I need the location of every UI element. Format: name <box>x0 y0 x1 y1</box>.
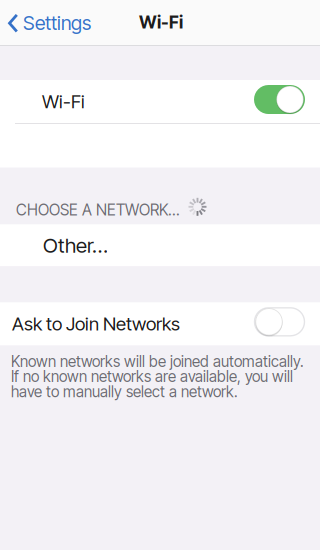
staticText: Known networks will be joined automatica… <box>11 352 304 371</box>
button[interactable]: Settings <box>0 0 97 46</box>
button[interactable]: Ask to Join Networks <box>0 302 320 345</box>
staticText: Settings <box>23 11 91 35</box>
staticText: Wi-Fi <box>42 90 85 113</box>
button[interactable]: Wi-Fi <box>0 80 320 123</box>
staticText: If no known networks are available, you … <box>11 367 293 386</box>
staticText: have to manually select a network. <box>11 382 238 401</box>
staticText: Other… <box>43 233 108 258</box>
staticText: Wi-Fi <box>139 11 183 33</box>
staticText: Ask to Join Networks <box>12 312 180 335</box>
staticText: CHOOSE A NETWORK... <box>16 200 180 219</box>
button[interactable]: Other… <box>0 224 320 266</box>
